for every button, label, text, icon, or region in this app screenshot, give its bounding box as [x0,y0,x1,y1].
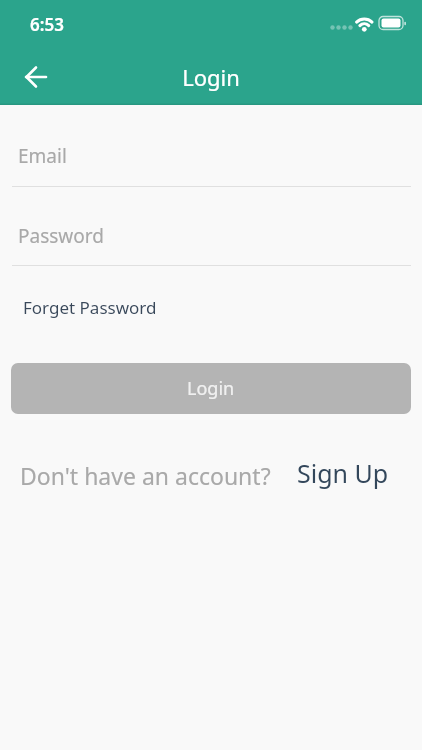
staticText: Login [0,62,422,92]
staticText: Forget Password [23,296,157,319]
staticText: 6:53 [30,13,64,36]
staticText: Don't have an account? [20,460,271,491]
staticText: Email [18,143,67,169]
button[interactable] [16,57,56,97]
button[interactable]: Forget Password [23,296,157,319]
staticText: Login [187,376,235,401]
button[interactable]: Sign Up [297,456,389,490]
staticText: Password [18,223,104,249]
button[interactable]: Login [11,363,411,414]
staticText: Sign Up [297,456,389,490]
